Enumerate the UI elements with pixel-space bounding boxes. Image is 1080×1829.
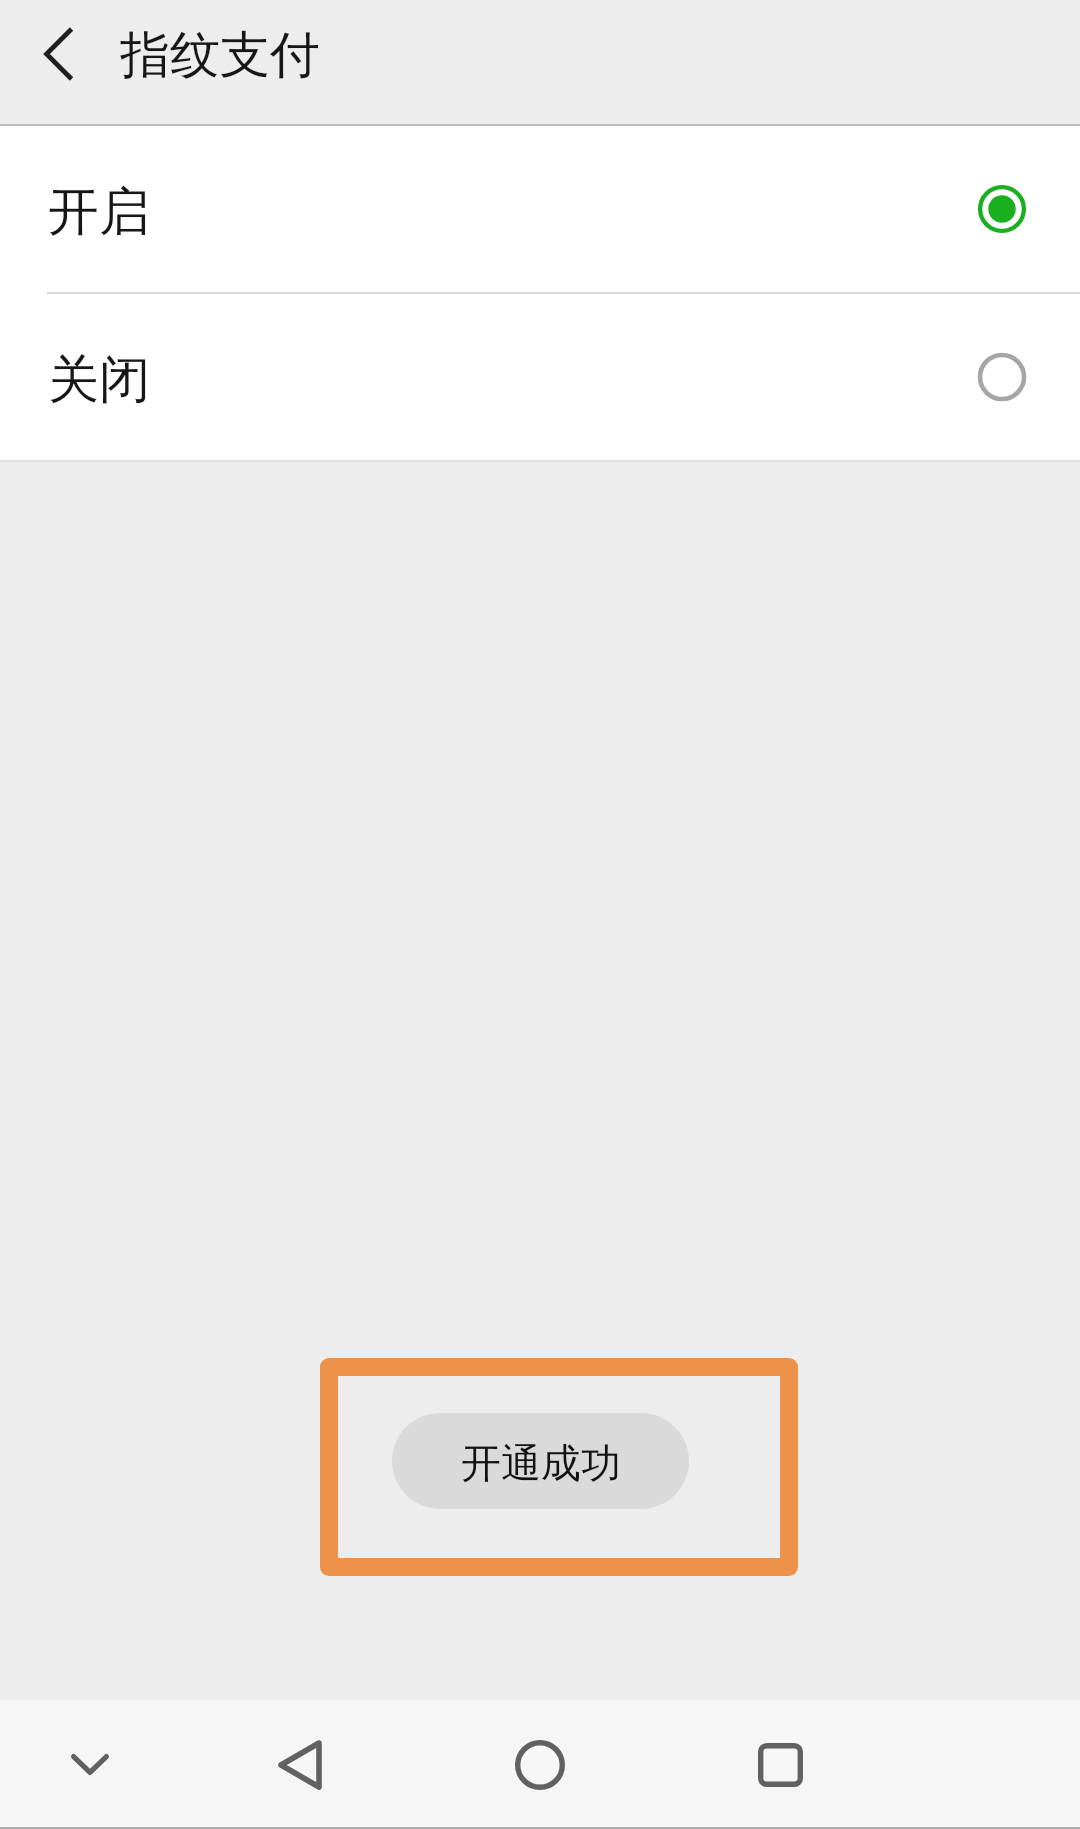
button[interactable]: Home <box>480 1700 600 1829</box>
staticText: 开通成功 <box>461 1438 621 1488</box>
staticText: 指纹支付 <box>120 24 320 87</box>
staticText: 开启 <box>48 180 150 244</box>
staticText: 关闭 <box>48 348 150 412</box>
button[interactable]: Back <box>0 0 112 106</box>
button[interactable]: Recents <box>720 1700 840 1829</box>
button[interactable]: 关闭 <box>0 294 1080 460</box>
button[interactable]: 开启 <box>0 126 1080 292</box>
button[interactable]: Back <box>240 1700 360 1829</box>
button[interactable]: Hide keyboard <box>30 1700 150 1829</box>
